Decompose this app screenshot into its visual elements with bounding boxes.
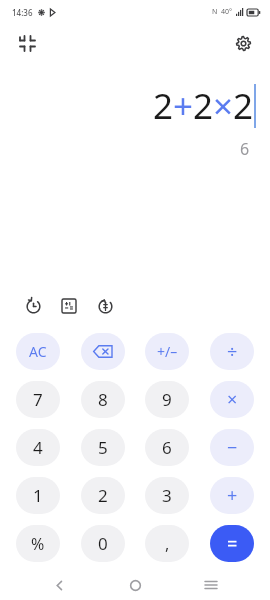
staticText: 2 [98,484,108,507]
button[interactable]: 6 [145,429,189,466]
button[interactable]: 0 [81,525,125,562]
staticText: = [227,531,238,556]
button[interactable]: Divide [210,333,254,370]
button[interactable]: 4 [16,429,60,466]
button[interactable]: 2 [81,477,125,514]
staticText: 7 [33,388,43,411]
staticText: ÷ [227,339,238,364]
staticText: 40° [221,7,233,17]
staticText: 9 [162,388,172,411]
staticText: N [212,7,218,17]
button[interactable]: Delete [81,333,125,370]
button[interactable]: Home [118,570,152,600]
button[interactable]: Recents [194,570,228,600]
button[interactable]: AC [16,333,60,370]
button[interactable]: History [20,293,46,319]
staticText: AC [29,342,47,361]
button[interactable]: Multiply [210,381,254,418]
staticText: 6 [240,138,250,160]
staticText: 4 [33,436,43,459]
staticText: 6 [162,436,172,459]
button[interactable]: Toggle sign [145,333,189,370]
staticText: 0 [98,532,108,555]
button[interactable]: Back [42,570,76,600]
staticText: 8 [98,388,108,411]
button[interactable]: Collapse [12,28,42,58]
button[interactable]: 8 [81,381,125,418]
button[interactable]: Settings [228,28,258,58]
button[interactable]: Minus [210,429,254,466]
staticText: 2+2×2 [152,82,253,130]
staticText: − [227,435,238,460]
button[interactable]: Plus [210,477,254,514]
staticText: + [227,483,238,508]
staticText: 14:36 [12,7,33,18]
staticText: 5 [98,436,108,459]
button[interactable]: 5 [81,429,125,466]
button[interactable]: Unit converter [56,293,82,319]
button[interactable]: Decimal separator [145,525,189,562]
button[interactable]: 9 [145,381,189,418]
staticText: 1 [33,484,43,507]
staticText: % [31,533,45,555]
button[interactable]: 1 [16,477,60,514]
button[interactable]: % [16,525,60,562]
button[interactable]: Currency converter [92,293,118,319]
staticText: , [165,533,170,555]
staticText: +/– [157,342,178,361]
button[interactable]: Equals [210,525,254,562]
button[interactable]: 7 [16,381,60,418]
staticText: × [227,387,238,412]
button[interactable]: 3 [145,477,189,514]
staticText: 3 [162,484,172,507]
